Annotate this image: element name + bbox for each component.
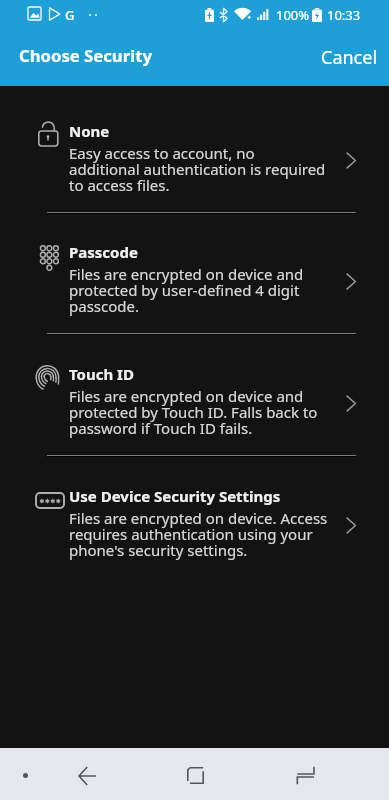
staticText: Easy access to account, no additional au… — [69, 146, 326, 194]
staticText: Files are encrypted on device and protec… — [69, 389, 318, 437]
staticText: Files are encrypted on device. Access re… — [69, 511, 328, 559]
staticText: Passcode — [69, 242, 138, 262]
button[interactable]: Home — [173, 753, 218, 798]
button[interactable]: Use Device Security Settings — [0, 468, 389, 576]
staticText: Touch ID — [69, 364, 134, 384]
staticText: 100% — [276, 6, 310, 24]
button[interactable]: Passcode — [0, 224, 389, 332]
button[interactable]: Touch ID — [0, 346, 389, 454]
button[interactable]: Recent apps — [283, 753, 328, 798]
staticText: Files are encrypted on device and protec… — [69, 267, 304, 315]
button[interactable]: Back — [65, 754, 109, 798]
staticText: Choose Security — [19, 44, 152, 67]
staticText: Use Device Security Settings — [69, 486, 281, 506]
staticText: G — [65, 6, 75, 24]
button[interactable]: Choose Security — [12, 38, 159, 73]
staticText: 10:33 — [327, 6, 361, 24]
staticText: Cancel — [321, 45, 378, 70]
button[interactable]: Cancel — [314, 39, 385, 76]
staticText: None — [69, 121, 110, 141]
button[interactable]: Navigation bar handle — [8, 758, 42, 792]
button[interactable]: None — [0, 103, 389, 211]
